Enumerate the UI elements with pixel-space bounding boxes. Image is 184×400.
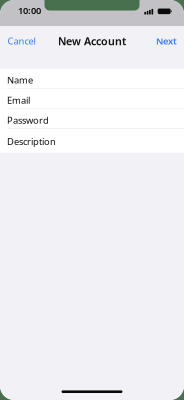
staticText: Description [7,135,56,148]
staticText: New Account [58,34,126,48]
staticText: 10:00 [18,4,41,17]
button[interactable]: Name [0,69,184,89]
staticText: Next [156,35,177,47]
button[interactable]: Description [0,129,184,153]
button[interactable]: Password [0,109,184,129]
staticText: Email [7,94,30,106]
staticText: Cancel [7,35,35,47]
staticText: Name [7,74,33,86]
button[interactable]: Email [0,89,184,109]
button[interactable]: Cancel [7,35,35,47]
staticText: Password [7,114,49,126]
button[interactable]: Next [156,35,177,47]
